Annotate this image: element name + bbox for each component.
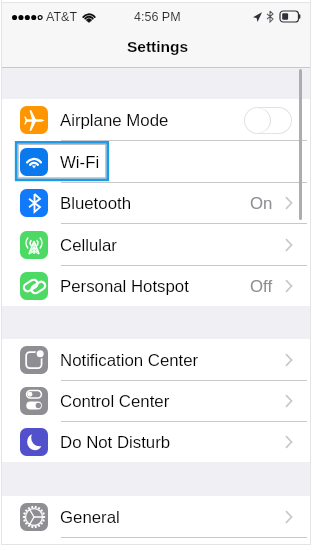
staticText: 4:56 PM bbox=[134, 10, 181, 24]
staticText: Off bbox=[250, 277, 273, 296]
staticText: Bluetooth bbox=[60, 194, 131, 213]
button[interactable]: Do Not Disturb bbox=[2, 422, 310, 462]
staticText: Personal Hotspot bbox=[60, 277, 189, 296]
button[interactable]: Bluetooth bbox=[2, 183, 310, 223]
button[interactable]: Wi-Fi bbox=[2, 141, 310, 182]
staticText: Settings bbox=[127, 38, 189, 55]
button[interactable]: Airplane Mode toggle bbox=[244, 107, 292, 134]
button[interactable]: Cellular bbox=[2, 224, 310, 265]
button[interactable]: Personal Hotspot bbox=[2, 266, 310, 306]
button[interactable]: Airplane Mode bbox=[2, 99, 310, 140]
button[interactable]: Notification Center bbox=[2, 339, 310, 380]
staticText: Airplane Mode bbox=[60, 111, 169, 130]
staticText: General bbox=[60, 508, 120, 527]
staticText: Wi-Fi bbox=[60, 153, 100, 172]
button[interactable]: Control Center bbox=[2, 381, 310, 421]
staticText: Notification Center bbox=[60, 351, 199, 370]
staticText: Cellular bbox=[60, 236, 117, 255]
staticText: On bbox=[250, 194, 273, 213]
staticText: Do Not Disturb bbox=[60, 433, 171, 452]
button[interactable]: General bbox=[2, 496, 310, 537]
staticText: AT&T bbox=[46, 10, 78, 24]
staticText: Control Center bbox=[60, 392, 170, 411]
